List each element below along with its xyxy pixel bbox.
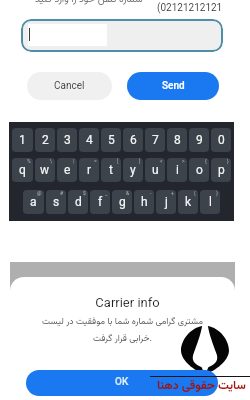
staticText: >	[182, 158, 185, 164]
staticText: k	[185, 195, 192, 209]
staticText: s	[53, 195, 60, 209]
staticText: \	[50, 158, 53, 164]
button[interactable]: OK	[26, 370, 218, 396]
button[interactable]: u	[145, 158, 165, 182]
button[interactable]: 1	[12, 128, 33, 152]
staticText: u	[152, 163, 159, 177]
staticText: Carrier info	[15, 295, 240, 310]
button[interactable]: d	[68, 190, 88, 214]
staticText: j	[165, 195, 168, 209]
staticText: %	[27, 158, 31, 164]
staticText: q	[19, 163, 26, 177]
button[interactable]: s	[46, 190, 66, 214]
staticText: _	[105, 190, 108, 196]
button[interactable]: i	[167, 158, 187, 182]
staticText: 8	[174, 133, 181, 147]
staticText: o	[196, 163, 203, 177]
staticText: 5	[108, 133, 115, 147]
staticText: =	[94, 158, 97, 164]
staticText: مشتری گرامی شماره شما با موفقیت در لیست …	[10, 315, 235, 346]
button[interactable]: t	[101, 158, 121, 182]
button[interactable]: f	[90, 190, 110, 214]
button[interactable]	[21, 19, 223, 52]
button[interactable]: p	[211, 158, 231, 182]
button[interactable]: q	[12, 158, 33, 182]
button[interactable]: k	[178, 190, 198, 214]
staticText: |	[73, 158, 75, 164]
button[interactable]: w	[35, 158, 55, 182]
button[interactable]: j	[156, 190, 176, 214]
staticText: ]	[139, 158, 141, 164]
staticText: 9	[196, 133, 203, 147]
staticText: &	[126, 190, 130, 196]
button[interactable]: l	[200, 190, 220, 214]
button[interactable]: 2	[35, 128, 55, 152]
button[interactable]: 0	[211, 128, 231, 152]
staticText: l	[209, 195, 212, 209]
staticText: Cancel	[54, 80, 85, 92]
staticText: e	[64, 163, 71, 177]
button[interactable]: Cancel	[27, 72, 112, 100]
staticText: #	[60, 190, 64, 196]
button[interactable]: 3	[57, 128, 77, 152]
staticText: <	[160, 158, 163, 164]
staticText: 3	[64, 133, 71, 147]
button[interactable]: Send	[127, 72, 219, 100]
staticText: شماره تلفن خود را وارد کنید	[35, 0, 143, 8]
staticText: i	[176, 163, 179, 177]
staticText: 6	[130, 133, 137, 147]
staticText: g	[119, 195, 126, 209]
button[interactable]: 8	[167, 128, 187, 152]
staticText: a	[30, 195, 37, 209]
button[interactable]: 5	[101, 128, 121, 152]
staticText: }	[227, 158, 229, 164]
staticText: Send	[162, 80, 185, 92]
staticText: p	[218, 163, 225, 177]
staticText: سایت حقوقی دهنا	[157, 377, 246, 396]
staticText: 1	[19, 133, 26, 147]
staticText: 0	[218, 133, 225, 147]
staticText: (02121212121	[157, 2, 223, 14]
staticText: y	[130, 163, 136, 177]
staticText: w	[40, 163, 50, 177]
staticText: r	[87, 163, 92, 177]
staticText: [	[117, 158, 119, 164]
button[interactable]: h	[134, 190, 154, 214]
button[interactable]: 9	[189, 128, 209, 152]
staticText: t	[109, 163, 113, 177]
staticText: f	[98, 195, 103, 209]
staticText: d	[75, 195, 82, 209]
staticText: (	[194, 190, 196, 196]
staticText: )	[216, 190, 218, 196]
staticText: h	[141, 195, 148, 209]
button[interactable]: y	[123, 158, 143, 182]
button[interactable]: 7	[145, 128, 165, 152]
button[interactable]: g	[112, 190, 132, 214]
staticText: $	[83, 190, 86, 196]
staticText: 7	[152, 133, 159, 147]
staticText: @	[37, 190, 42, 196]
staticText: +	[171, 190, 174, 196]
staticText: -	[150, 190, 152, 196]
button[interactable]: e	[57, 158, 77, 182]
button[interactable]: 6	[123, 128, 143, 152]
button[interactable]: o	[189, 158, 209, 182]
button[interactable]: 4	[79, 128, 99, 152]
staticText: 4	[86, 133, 93, 147]
staticText: {	[205, 158, 207, 164]
staticText: OK	[115, 376, 129, 388]
other: Dena logo	[181, 325, 229, 374]
staticText: 2	[42, 133, 49, 147]
button[interactable]: a	[23, 190, 44, 214]
button[interactable]: r	[79, 158, 99, 182]
